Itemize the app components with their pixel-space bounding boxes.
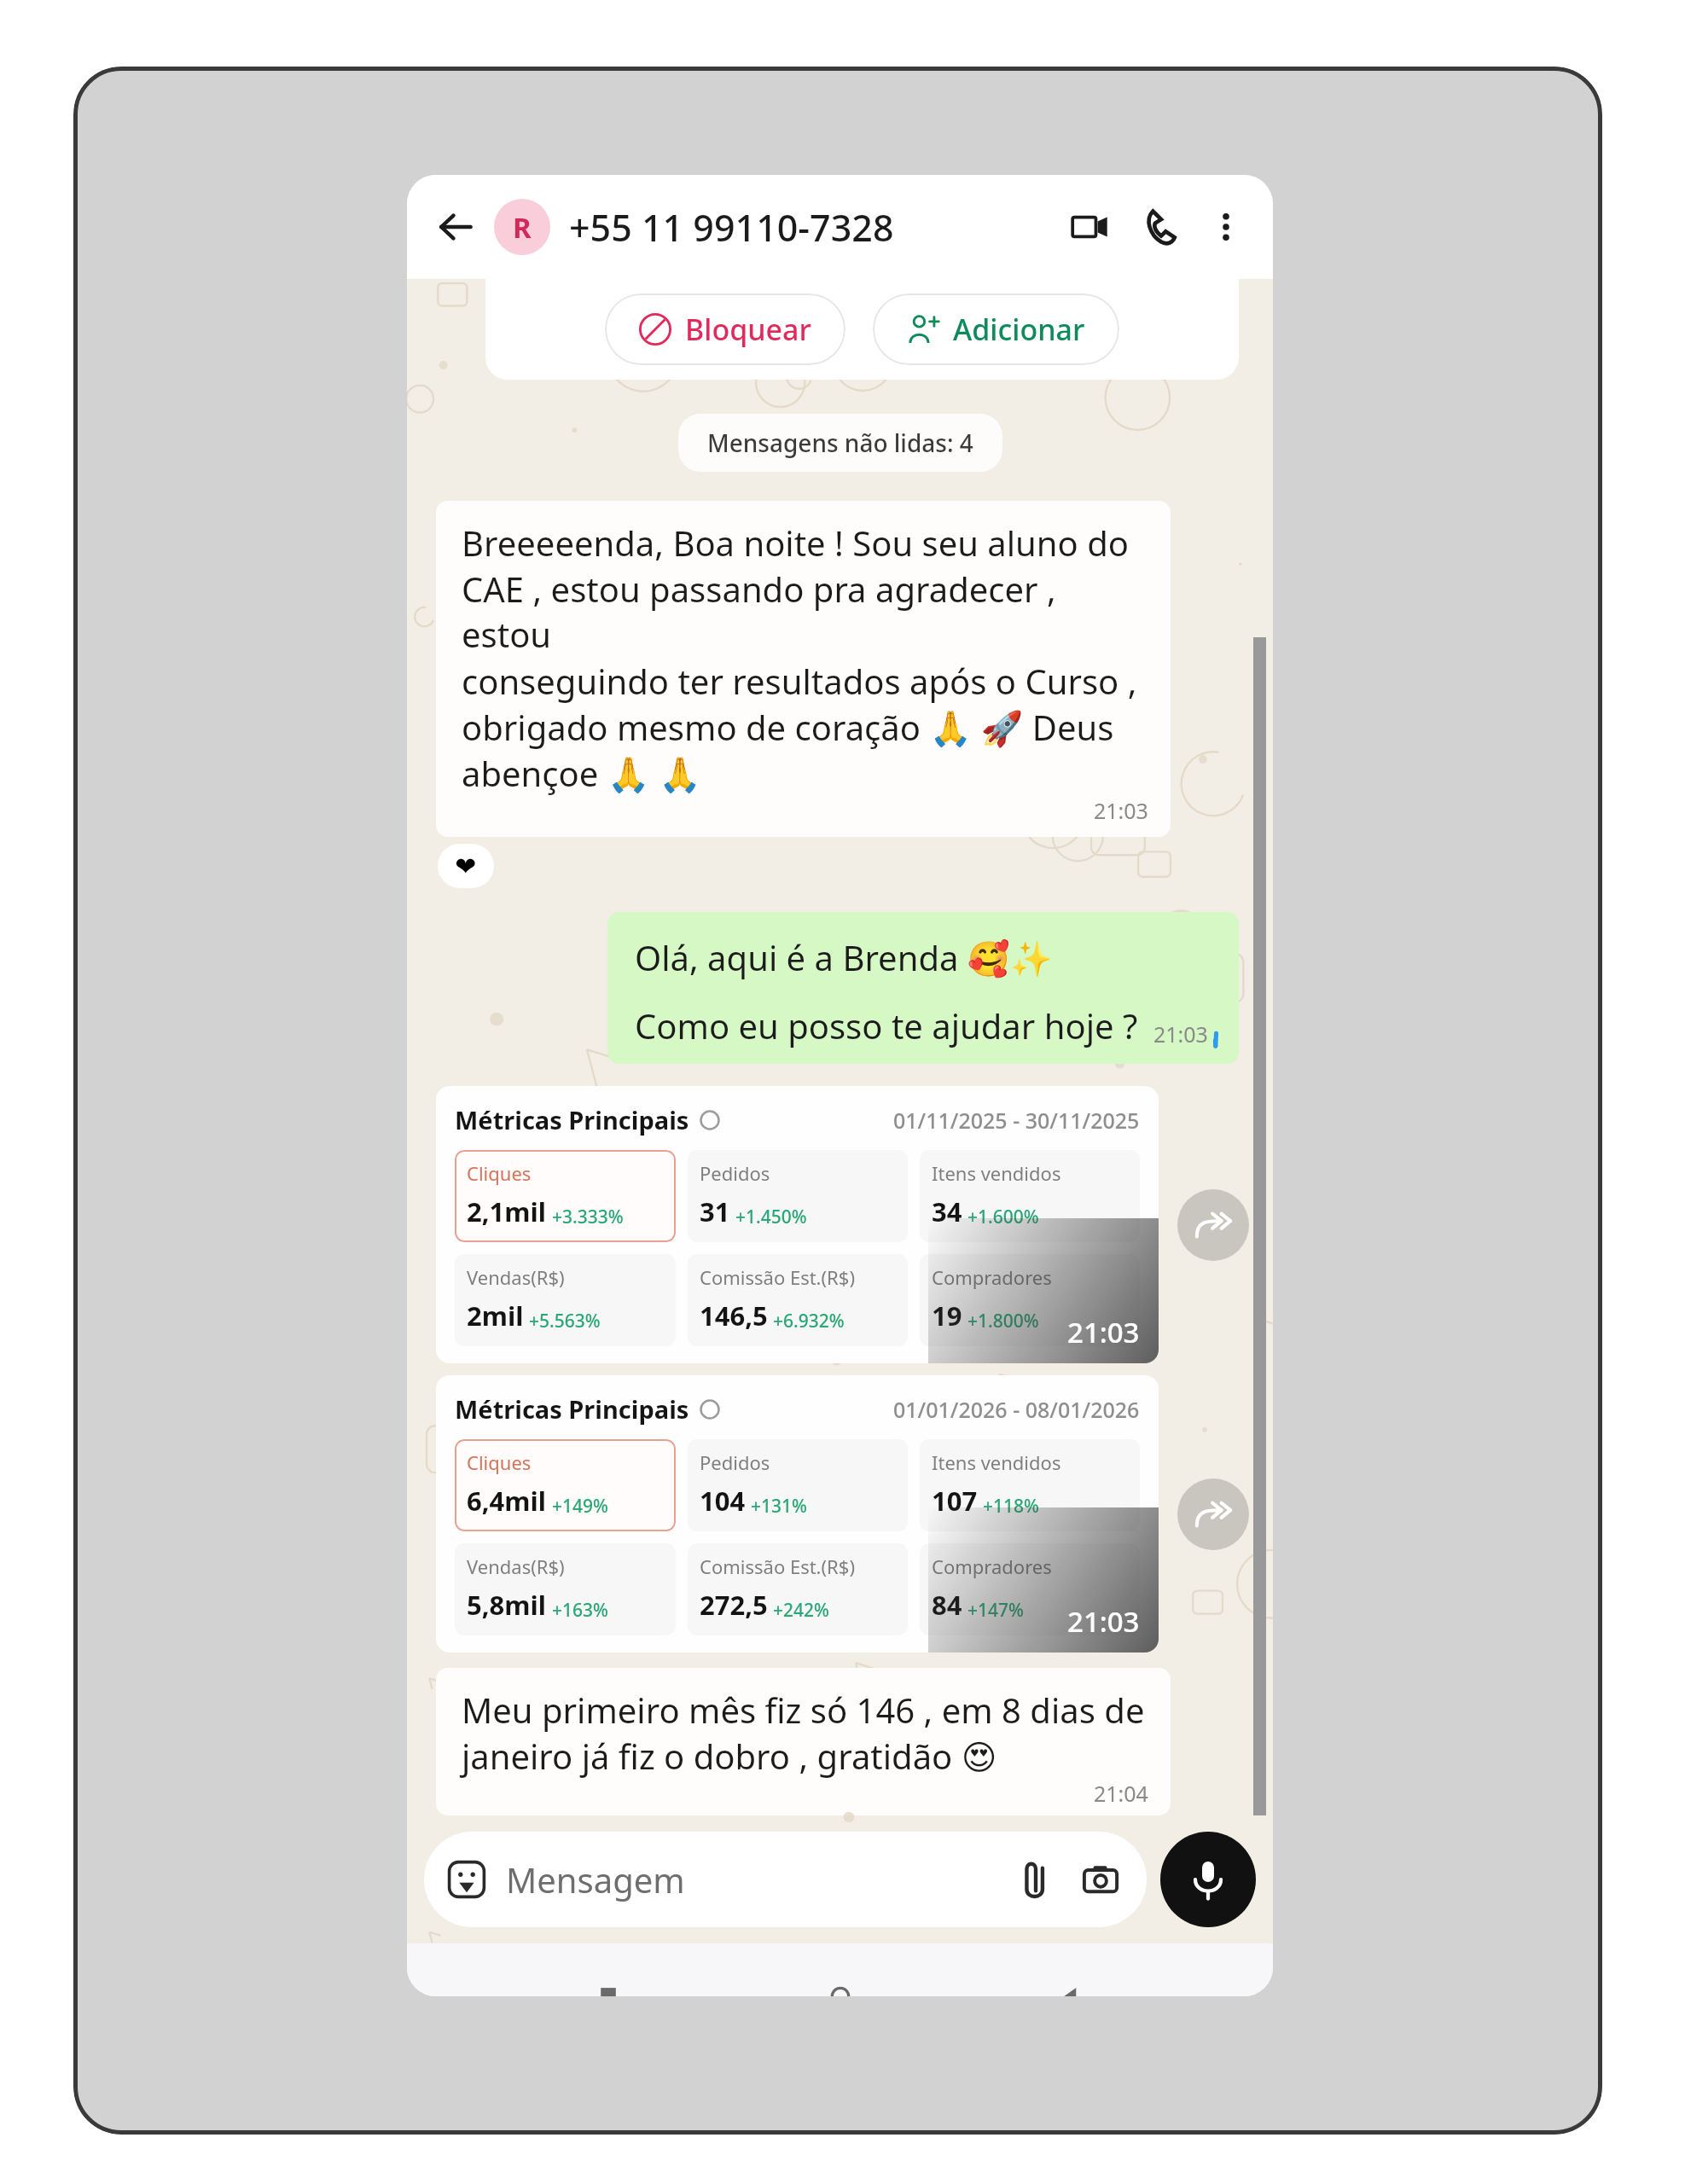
staticText: janeiro já fiz o dobro , gratidão 😍 [462,1733,997,1779]
staticText: Métricas Principais [455,1103,689,1136]
staticText: Itens vendidos [932,1160,1061,1186]
button[interactable]: Mensagem [446,1832,1124,1927]
staticText: 01/01/2026 - 08/01/2026 [893,1395,1140,1424]
button[interactable]: Contact avatar [494,199,550,255]
staticText: obrigado mesmo de coração 🙏 🚀 Deus [462,704,1114,750]
staticText: Adicionar [953,310,1085,349]
staticText: 21:03 [1067,1602,1140,1641]
staticText: +1.600% [967,1205,1039,1229]
button[interactable]: Compradores [932,1264,1128,1336]
staticText: Vendas(R$) [467,1554,565,1579]
staticText: Comissão Est.(R$) [700,1554,855,1579]
staticText: +5.563% [529,1309,601,1333]
staticText: Mensagens não lidas: 4 [707,427,973,459]
staticText: Mensagem [506,1856,685,1902]
button[interactable]: Back [429,200,482,253]
button[interactable]: Mensagens não lidas: 4 [707,427,973,459]
staticText: Métricas Principais [455,1392,689,1426]
staticText: 104 [700,1483,746,1519]
staticText: conseguindo ter resultados após o Curso … [462,658,1137,704]
button[interactable]: Heart reaction [438,844,494,888]
staticText: 21:03 [1067,1313,1140,1351]
button[interactable]: Recents [578,1976,638,1996]
staticText: Cliques [467,1449,532,1475]
staticText: R [513,208,532,247]
button[interactable]: Vendas(R$) [467,1264,664,1336]
staticText: Compradores [932,1554,1052,1579]
button[interactable]: Breeeeenda, Boa noite ! Sou seu aluno do [462,520,1148,825]
button[interactable]: Vendas(R$) [467,1554,664,1625]
staticText: +163% [552,1598,608,1623]
staticText: 272,5 [700,1587,768,1623]
staticText: 146,5 [700,1298,768,1333]
staticText: 84 [932,1587,962,1623]
button[interactable]: Attach [1012,1856,1060,1903]
button[interactable]: Video call [1061,199,1118,255]
button[interactable]: Meu primeiro mês fiz só 146 , em 8 dias … [462,1687,1148,1804]
staticText: abençoe 🙏 🙏 [462,750,701,796]
button[interactable]: Back [1042,1976,1101,1996]
staticText: +149% [552,1494,608,1519]
staticText: 21:03 [1094,796,1148,825]
staticText: 19 [932,1298,962,1333]
staticText: Bloquear [685,310,811,349]
button[interactable]: Cliques [467,1449,664,1521]
staticText: Breeeeenda, Boa noite ! Sou seu aluno do [462,520,1129,566]
button[interactable]: Camera [1077,1856,1124,1903]
staticText: 107 [932,1483,978,1519]
button[interactable]: Voice call [1133,199,1189,255]
staticText: +118% [983,1494,1039,1519]
staticText: Itens vendidos [932,1449,1061,1475]
staticText: Cliques [467,1160,532,1186]
staticText: Compradores [932,1264,1052,1290]
staticText: 01/11/2025 - 30/11/2025 [893,1106,1140,1135]
button[interactable]: Métricas Principais [436,1375,1159,1653]
staticText: Vendas(R$) [467,1264,565,1290]
staticText: Pedidos [700,1160,770,1186]
staticText: 31 [700,1194,730,1229]
staticText: Comissão Est.(R$) [700,1264,855,1290]
button[interactable]: Métricas Principais [436,1086,1159,1363]
staticText: +1.800% [967,1309,1039,1333]
staticText: 2mil [467,1298,524,1333]
staticText: +242% [773,1598,829,1623]
button[interactable]: Pedidos [700,1449,896,1521]
staticText: +131% [751,1494,807,1519]
staticText: +147% [967,1598,1024,1623]
button[interactable]: Adicionar [907,310,1085,349]
button[interactable]: Comissão Est.(R$) [700,1264,896,1336]
staticText: +3.333% [552,1205,624,1229]
button[interactable]: Forward [1177,1189,1249,1261]
staticText: CAE , estou passando pra agradecer , est… [462,566,1148,658]
staticText: ❤️ [455,851,477,881]
button[interactable]: Bloquear [639,310,811,349]
staticText: 5,8mil [467,1587,547,1623]
button[interactable]: Cliques [467,1160,664,1232]
button[interactable]: Compradores [932,1554,1128,1625]
button[interactable]: Home [811,1976,870,1996]
staticText: +55 11 99110-7328 [569,202,894,253]
staticText: Pedidos [700,1449,770,1475]
staticText: +6.932% [773,1309,845,1333]
button[interactable]: Olá, aqui é a Brenda 🥰✨ [635,934,1217,1048]
staticText: Como eu posso te ajudar hoje ? [635,1002,1138,1048]
staticText: +1.450% [735,1205,807,1229]
staticText: 34 [932,1194,962,1229]
button[interactable]: Itens vendidos [932,1160,1128,1232]
button[interactable]: Pedidos [700,1160,896,1232]
button[interactable]: Record voice message [1160,1832,1256,1927]
staticText: 21:03 [1153,1019,1208,1048]
staticText: Meu primeiro mês fiz só 146 , em 8 dias … [462,1687,1145,1733]
button[interactable]: Forward [1177,1478,1249,1550]
button[interactable]: More options [1201,202,1251,252]
staticText: 2,1mil [467,1194,547,1229]
staticText: 21:04 [1094,1779,1148,1804]
button[interactable]: Itens vendidos [932,1449,1128,1521]
staticText: Olá, aqui é a Brenda 🥰✨ [635,934,1053,980]
button[interactable]: Comissão Est.(R$) [700,1554,896,1625]
staticText: 6,4mil [467,1483,547,1519]
